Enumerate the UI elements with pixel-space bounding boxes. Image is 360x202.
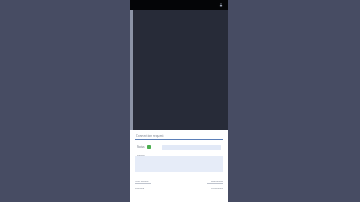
- button[interactable]: Your Details: [135, 179, 179, 189]
- staticText: Pending: [135, 186, 145, 189]
- button[interactable]: Requested: [179, 179, 223, 189]
- staticText: Requested: [211, 179, 223, 182]
- staticText: Your Details: [135, 179, 149, 182]
- button[interactable]: Connection request: [136, 132, 222, 139]
- staticText: Connection request: [136, 134, 164, 138]
- staticText: Confirmed: [211, 186, 223, 189]
- button[interactable]: Menu: [218, 2, 224, 8]
- staticText: Details: [137, 153, 145, 156]
- button[interactable]: Status: [137, 144, 221, 150]
- staticText: Status: [137, 145, 145, 149]
